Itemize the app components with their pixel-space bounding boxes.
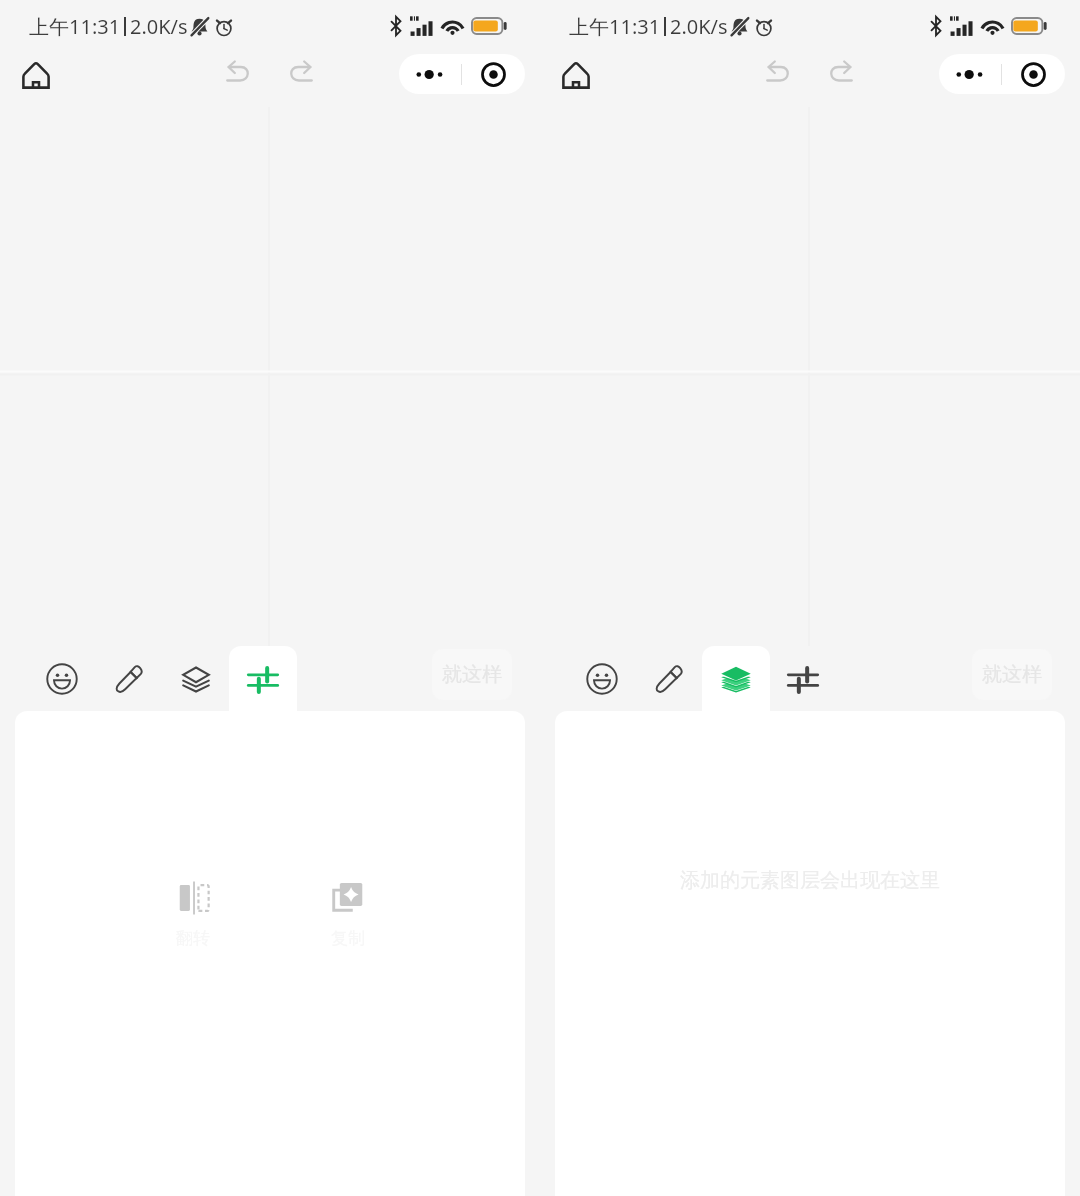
button[interactable]: Stickers	[568, 646, 636, 711]
button[interactable]: Close	[462, 54, 525, 94]
staticText: 复制	[331, 928, 365, 949]
staticText: 2.0K/s	[130, 13, 188, 40]
button[interactable]: Stickers	[28, 646, 96, 711]
button[interactable]: Redo	[277, 47, 325, 95]
staticText: 上午11:31	[29, 13, 121, 40]
button[interactable]: Redo	[817, 47, 865, 95]
button[interactable]: 就这样	[972, 649, 1052, 700]
button[interactable]: Adjust	[229, 646, 297, 711]
button[interactable]: Draw	[635, 646, 703, 711]
staticText: 就这样	[982, 662, 1042, 687]
button[interactable]: Draw	[95, 646, 163, 711]
button[interactable]: More	[399, 54, 461, 94]
button[interactable]: More	[939, 54, 1001, 94]
button[interactable]: Adjust	[769, 646, 837, 711]
button[interactable]: Undo	[753, 47, 801, 95]
staticText: 翻转	[176, 928, 210, 949]
button[interactable]: 复制	[308, 880, 388, 949]
button[interactable]: Close	[1002, 54, 1065, 94]
button[interactable]: 翻转	[153, 880, 233, 949]
button[interactable]: Home	[12, 51, 60, 99]
button[interactable]: Undo	[213, 47, 261, 95]
button[interactable]: Home	[552, 51, 600, 99]
button[interactable]: Layers	[702, 646, 770, 711]
staticText: 2.0K/s	[670, 13, 728, 40]
staticText: 添加的元素图层会出现在这里	[680, 868, 940, 893]
staticText: 就这样	[442, 662, 502, 687]
staticText: 上午11:31	[569, 13, 661, 40]
button[interactable]: 就这样	[432, 649, 512, 700]
button[interactable]: Layers	[162, 646, 230, 711]
